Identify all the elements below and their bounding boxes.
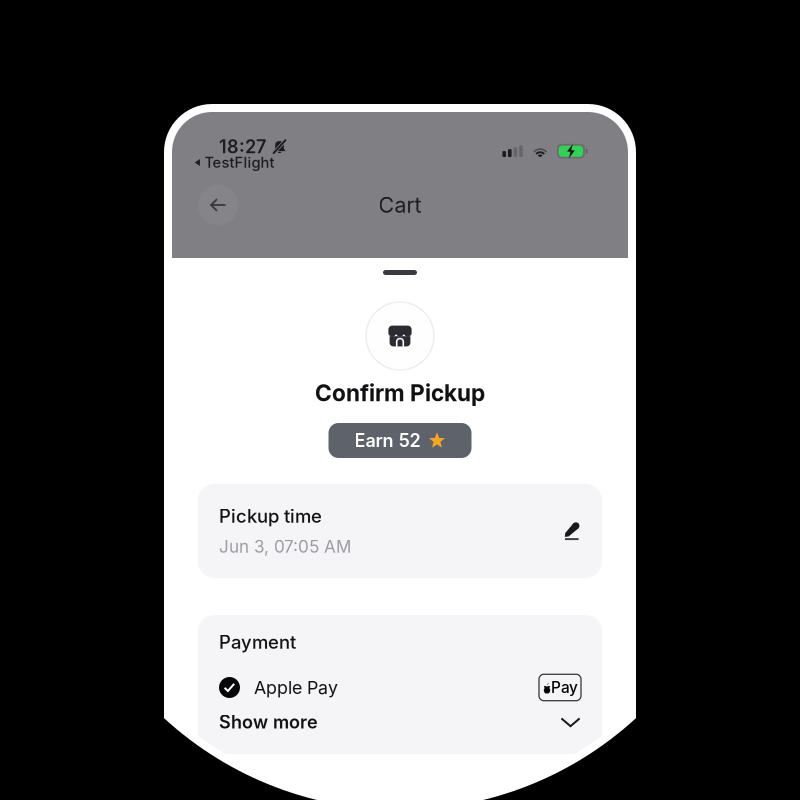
staticText: Cart (378, 192, 421, 218)
button[interactable]: Apple Pay (219, 652, 581, 701)
staticText: Pay (551, 678, 578, 697)
staticText: Pickup time (219, 505, 322, 527)
button[interactable]: Show more (219, 701, 581, 732)
button[interactable]: Back (198, 185, 238, 225)
button[interactable]: Edit pickup time (563, 521, 581, 540)
staticText: Payment (219, 631, 296, 653)
staticText: Confirm Pickup (315, 379, 485, 407)
staticText: Jun 3, 07:05 AM (219, 536, 351, 557)
staticText: Earn 52 (354, 430, 420, 451)
staticText: 18:27 (219, 136, 266, 158)
staticText: Apple Pay (254, 677, 338, 698)
staticText: TestFlight (205, 154, 275, 171)
button[interactable]: Earn 52 (328, 423, 471, 458)
staticText: Show more (219, 711, 318, 733)
